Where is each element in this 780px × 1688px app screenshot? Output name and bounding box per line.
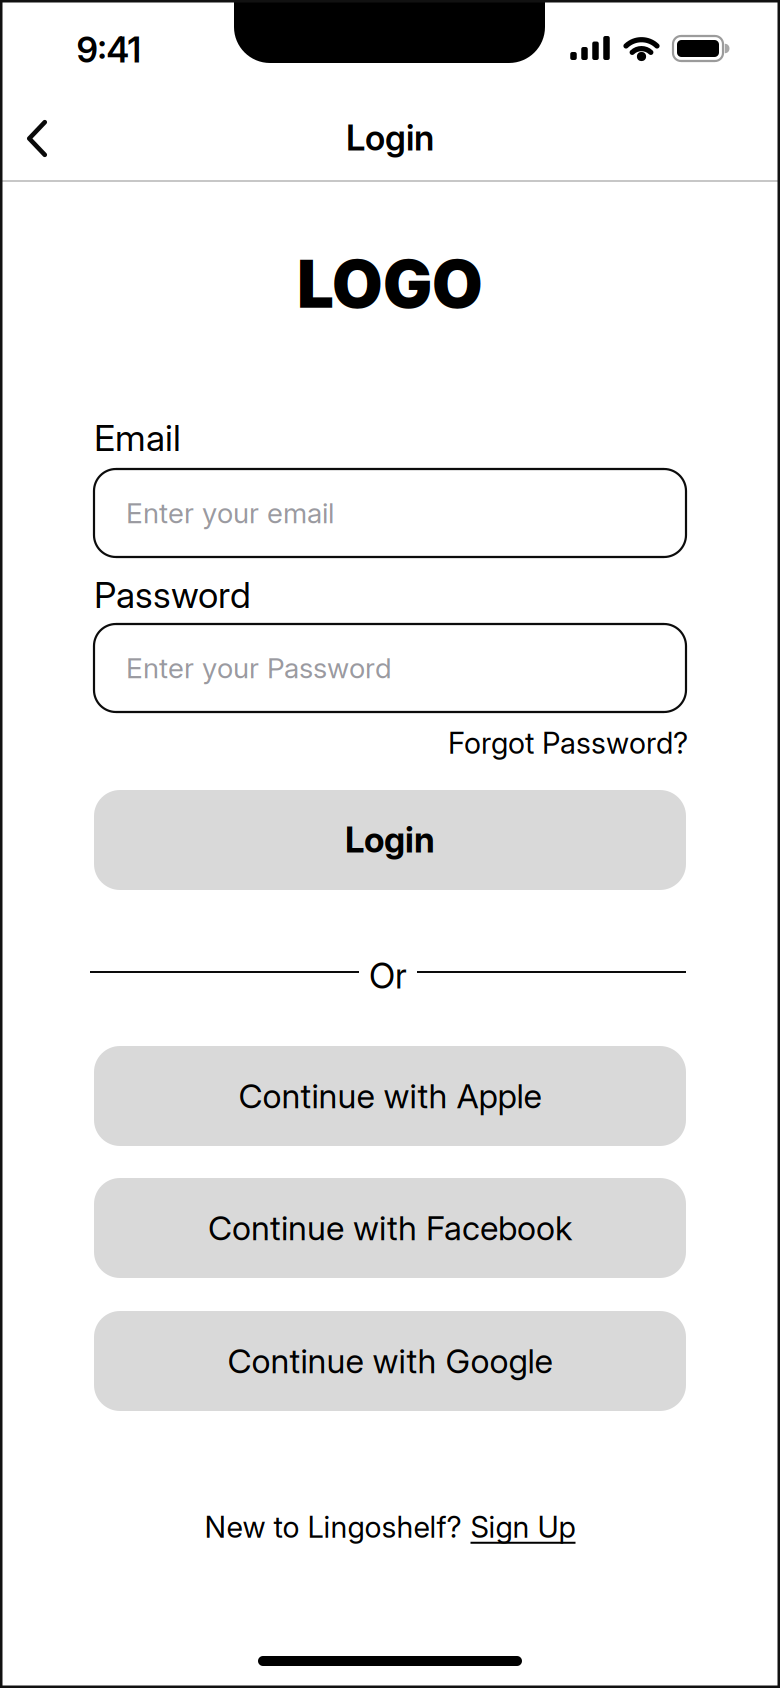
staticText: Password xyxy=(94,574,251,616)
button[interactable]: Continue with Google xyxy=(94,1311,686,1411)
staticText: LOGO xyxy=(297,245,483,323)
staticText: Login xyxy=(346,118,434,158)
button[interactable]: Enter your email xyxy=(94,469,686,557)
staticText: Login xyxy=(345,820,435,860)
staticText: Enter your Password xyxy=(126,651,392,684)
button[interactable]: Login xyxy=(94,790,686,890)
staticText: Email xyxy=(94,417,181,459)
staticText: Continue with Google xyxy=(227,1341,552,1381)
button[interactable]: Enter your Password xyxy=(94,624,686,712)
staticText: Continue with Facebook xyxy=(208,1208,572,1248)
button[interactable]: Back xyxy=(15,112,59,164)
staticText: Enter your email xyxy=(126,496,334,529)
button[interactable]: Continue with Facebook xyxy=(94,1178,686,1278)
staticText: New to Lingoshelf? xyxy=(204,1510,461,1544)
staticText: Or xyxy=(369,956,407,996)
button[interactable]: Sign Up xyxy=(470,1510,575,1544)
staticText: Sign Up xyxy=(470,1510,575,1544)
staticText: Forgot Password? xyxy=(448,726,688,760)
button[interactable]: Continue with Apple xyxy=(94,1046,686,1146)
button[interactable]: Forgot Password? xyxy=(448,726,688,760)
staticText: Continue with Apple xyxy=(238,1076,541,1116)
staticText: 9:41 xyxy=(76,30,141,70)
